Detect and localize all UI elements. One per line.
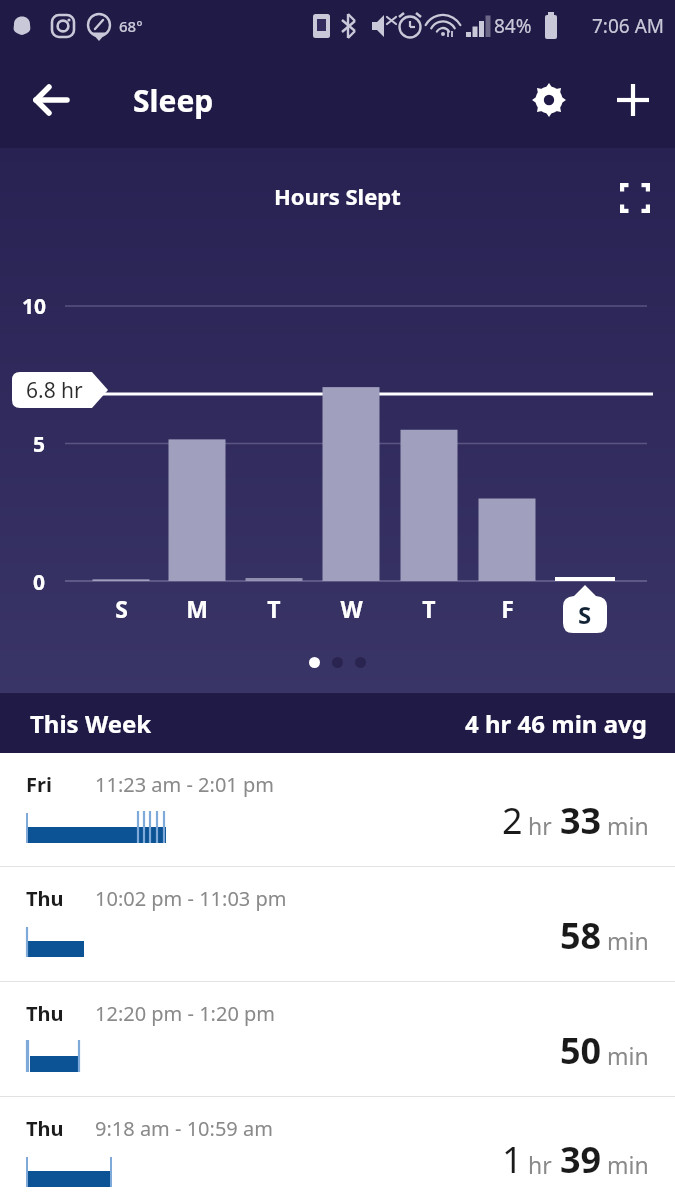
button[interactable]: Thu — [0, 866, 675, 981]
staticText: This Week — [30, 707, 152, 740]
button[interactable]: Fri — [0, 753, 675, 866]
staticText: 39 — [560, 1135, 602, 1184]
button[interactable]: Add — [605, 72, 661, 128]
button[interactable] — [332, 657, 343, 668]
button[interactable]: This Week — [0, 693, 675, 753]
staticText: S — [578, 598, 592, 631]
staticText: S — [115, 593, 128, 624]
button[interactable] — [309, 657, 320, 668]
staticText: 58 — [560, 911, 602, 960]
button[interactable]: Thu — [0, 1096, 675, 1200]
button[interactable] — [355, 657, 366, 668]
staticText: Sleep — [133, 80, 214, 121]
staticText: 10:02 pm - 11:03 pm — [95, 885, 287, 912]
staticText: min — [607, 925, 649, 956]
staticText: Thu — [26, 885, 64, 912]
staticText: 0 — [33, 568, 46, 597]
staticText: 2 — [502, 796, 523, 845]
staticText: T — [267, 593, 281, 624]
staticText: 9:18 am - 10:59 am — [95, 1115, 273, 1142]
staticText: hr — [528, 1149, 552, 1180]
staticText: M — [186, 593, 208, 624]
staticText: 11:23 am - 2:01 pm — [95, 771, 274, 798]
staticText: F — [501, 593, 514, 624]
staticText: 7:06 AM — [592, 13, 665, 39]
button[interactable]: Settings — [521, 72, 577, 128]
button[interactable]: Back — [22, 71, 80, 129]
staticText: 33 — [560, 796, 602, 845]
button[interactable]: Expand chart — [611, 174, 659, 222]
staticText: 84% — [494, 13, 532, 39]
staticText: min — [607, 810, 649, 841]
staticText: min — [607, 1149, 649, 1180]
staticText: 1 — [502, 1135, 523, 1184]
staticText: 68° — [119, 16, 143, 36]
staticText: W — [340, 593, 363, 624]
staticText: Thu — [26, 1115, 64, 1142]
staticText: Hours Slept — [274, 181, 401, 211]
staticText: 5 — [33, 430, 46, 459]
staticText: min — [607, 1040, 649, 1071]
staticText: Fri — [26, 771, 52, 798]
staticText: 12:20 pm - 1:20 pm — [95, 1000, 276, 1027]
staticText: hr — [528, 810, 552, 841]
staticText: Thu — [26, 1000, 64, 1027]
staticText: 4 hr 46 min avg — [465, 707, 647, 740]
staticText: 6.8 hr — [26, 376, 83, 405]
staticText: 10 — [22, 292, 47, 321]
staticText: 50 — [560, 1026, 602, 1075]
button[interactable]: Thu — [0, 981, 675, 1096]
staticText: T — [422, 593, 436, 624]
